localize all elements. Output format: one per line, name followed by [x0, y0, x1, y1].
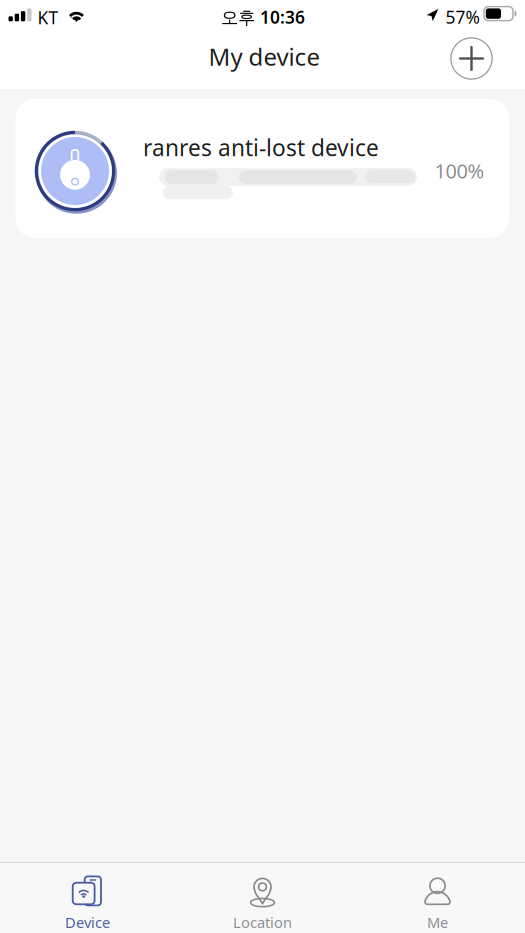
staticText: Location	[233, 912, 292, 932]
staticText: 57%	[445, 5, 479, 28]
staticText: ranres anti-lost device	[143, 132, 379, 163]
staticText: 100%	[434, 157, 484, 184]
button[interactable]: Device	[0, 863, 175, 933]
staticText: 오후 10:36	[221, 5, 305, 28]
button[interactable]: ranres anti-lost device	[15, 99, 509, 238]
staticText: KT	[37, 6, 58, 29]
button[interactable]: Me	[350, 863, 525, 933]
staticText: Me	[427, 912, 448, 932]
button[interactable]: Location	[175, 863, 350, 933]
staticText: My device	[208, 40, 320, 72]
staticText: Device	[65, 912, 110, 932]
button[interactable]: Add device	[450, 37, 493, 80]
